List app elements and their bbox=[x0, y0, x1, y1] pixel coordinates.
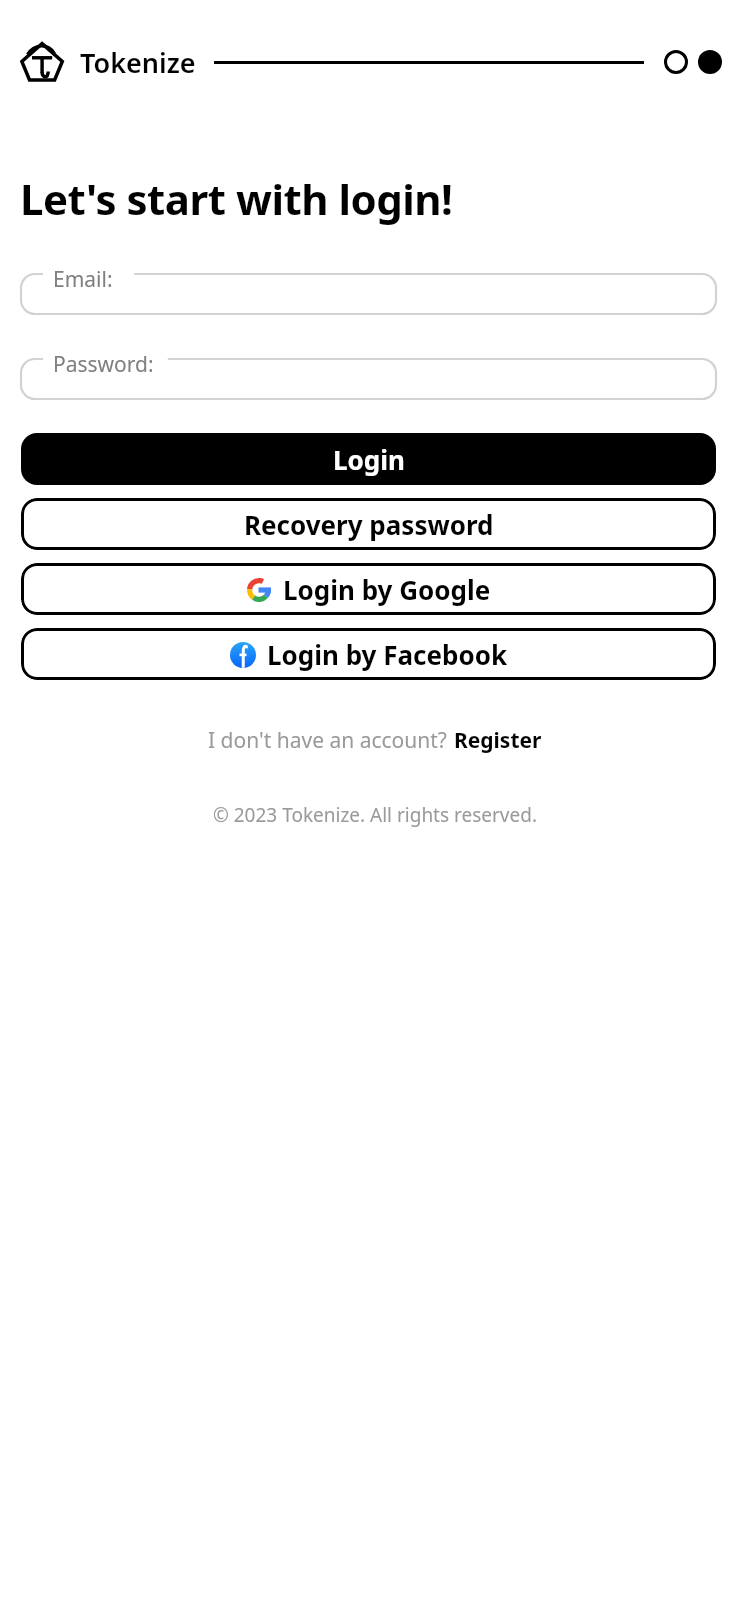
button[interactable]: Login by Facebook bbox=[21, 628, 716, 680]
button[interactable]: Login by Google bbox=[21, 563, 716, 615]
staticText: I don't have an account? bbox=[208, 726, 447, 755]
button[interactable]: Password: bbox=[21, 350, 716, 408]
button[interactable]: Tokenize logo bbox=[20, 39, 66, 85]
button[interactable]: Dark theme bbox=[698, 50, 722, 74]
staticText: Tokenize bbox=[80, 44, 196, 81]
staticText: Login by Google bbox=[283, 572, 491, 607]
staticText: © 2023 Tokenize. All rights reserved. bbox=[0, 802, 750, 828]
button[interactable]: I don't have an account? bbox=[0, 720, 750, 761]
staticText: Let's start with login! bbox=[20, 170, 453, 227]
staticText: Login bbox=[333, 442, 405, 477]
button[interactable]: Login bbox=[21, 433, 716, 485]
staticText: Email: bbox=[53, 265, 113, 294]
staticText: Register bbox=[454, 726, 542, 755]
staticText: Recovery password bbox=[244, 507, 494, 542]
staticText: Login by Facebook bbox=[267, 637, 508, 672]
button[interactable]: Light theme bbox=[664, 50, 688, 74]
staticText: Password: bbox=[53, 350, 154, 379]
button[interactable]: Recovery password bbox=[21, 498, 716, 550]
button[interactable]: Email: bbox=[21, 265, 716, 323]
